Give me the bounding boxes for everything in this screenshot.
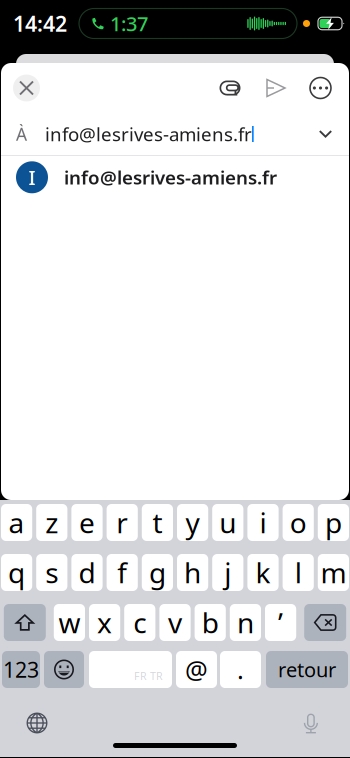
staticText: y [186,504,200,541]
staticText: k [255,554,270,591]
staticText: info@lesrives-amiens.fr [64,165,277,190]
button[interactable]: r [107,504,138,541]
button[interactable]: Delete [304,604,346,641]
button[interactable]: À [1,113,349,155]
button[interactable]: @ [176,651,217,688]
staticText: d [78,554,95,591]
button[interactable]: b [195,604,226,641]
button[interactable]: p [318,504,349,541]
button[interactable]: Attach [217,74,243,102]
button[interactable]: v [159,604,191,641]
staticText: 123 [3,655,39,684]
button[interactable]: q [1,554,32,591]
staticText: q [8,554,25,591]
button[interactable]: space [89,651,172,688]
button[interactable]: More options [308,74,333,102]
button[interactable]: d [71,554,103,591]
staticText: I [28,164,35,191]
button[interactable]: g [142,554,173,591]
button[interactable]: x [89,604,120,641]
staticText: x [97,604,112,641]
button[interactable]: k [247,554,279,591]
staticText: i [259,504,266,541]
button[interactable]: c [124,604,155,641]
button[interactable]: m [318,554,349,591]
staticText: f [117,554,127,591]
button[interactable]: . [220,651,261,688]
staticText: t [152,504,162,541]
button[interactable]: w [54,604,85,641]
button[interactable]: Emoji [44,651,84,688]
staticText: l [295,554,302,591]
button[interactable]: z [36,504,67,541]
staticText: u [219,504,236,541]
button[interactable]: j [212,554,243,591]
staticText: c [133,604,146,641]
button[interactable]: n [230,604,261,641]
button[interactable]: t [142,504,173,541]
staticText: . [237,653,244,686]
button[interactable]: l [283,554,314,591]
staticText: o [290,504,307,541]
button[interactable]: Dictation [297,711,325,735]
staticText: 14:42 [13,9,67,38]
staticText: n [237,604,254,641]
staticText: @ [185,653,208,686]
staticText: e [79,504,95,541]
button[interactable]: y [177,504,208,541]
button[interactable]: a [1,504,32,541]
button[interactable]: 123 [2,651,40,688]
button[interactable]: u [212,504,243,541]
button[interactable]: Close [13,74,40,101]
button[interactable]: i [247,504,279,541]
staticText: z [45,504,58,541]
staticText: w [58,604,80,641]
button[interactable]: o [283,504,314,541]
staticText: j [224,554,231,591]
button[interactable]: Shift [4,604,46,641]
button[interactable]: e [71,504,103,541]
staticText: 1:37 [110,10,148,37]
staticText: r [116,504,128,541]
staticText: g [149,554,166,591]
button[interactable]: s [36,554,67,591]
staticText: retour [278,656,336,683]
staticText: info@lesrives-amiens.fr [45,122,252,146]
staticText: v [168,604,182,641]
staticText: p [325,504,342,541]
staticText: m [320,554,346,591]
button[interactable]: Send [263,74,289,102]
staticText: FR TR [134,669,163,683]
button[interactable]: Change keyboard [23,711,51,735]
button[interactable]: retour [266,651,348,688]
staticText: a [9,504,25,541]
button[interactable]: h [177,554,208,591]
button[interactable]: ’ [265,604,296,641]
button[interactable]: f [107,554,138,591]
staticText: h [184,554,201,591]
button[interactable]: I [1,156,349,199]
staticText: b [202,604,219,641]
staticText: À [16,122,27,145]
staticText: ’ [278,604,283,641]
staticText: s [45,554,58,591]
